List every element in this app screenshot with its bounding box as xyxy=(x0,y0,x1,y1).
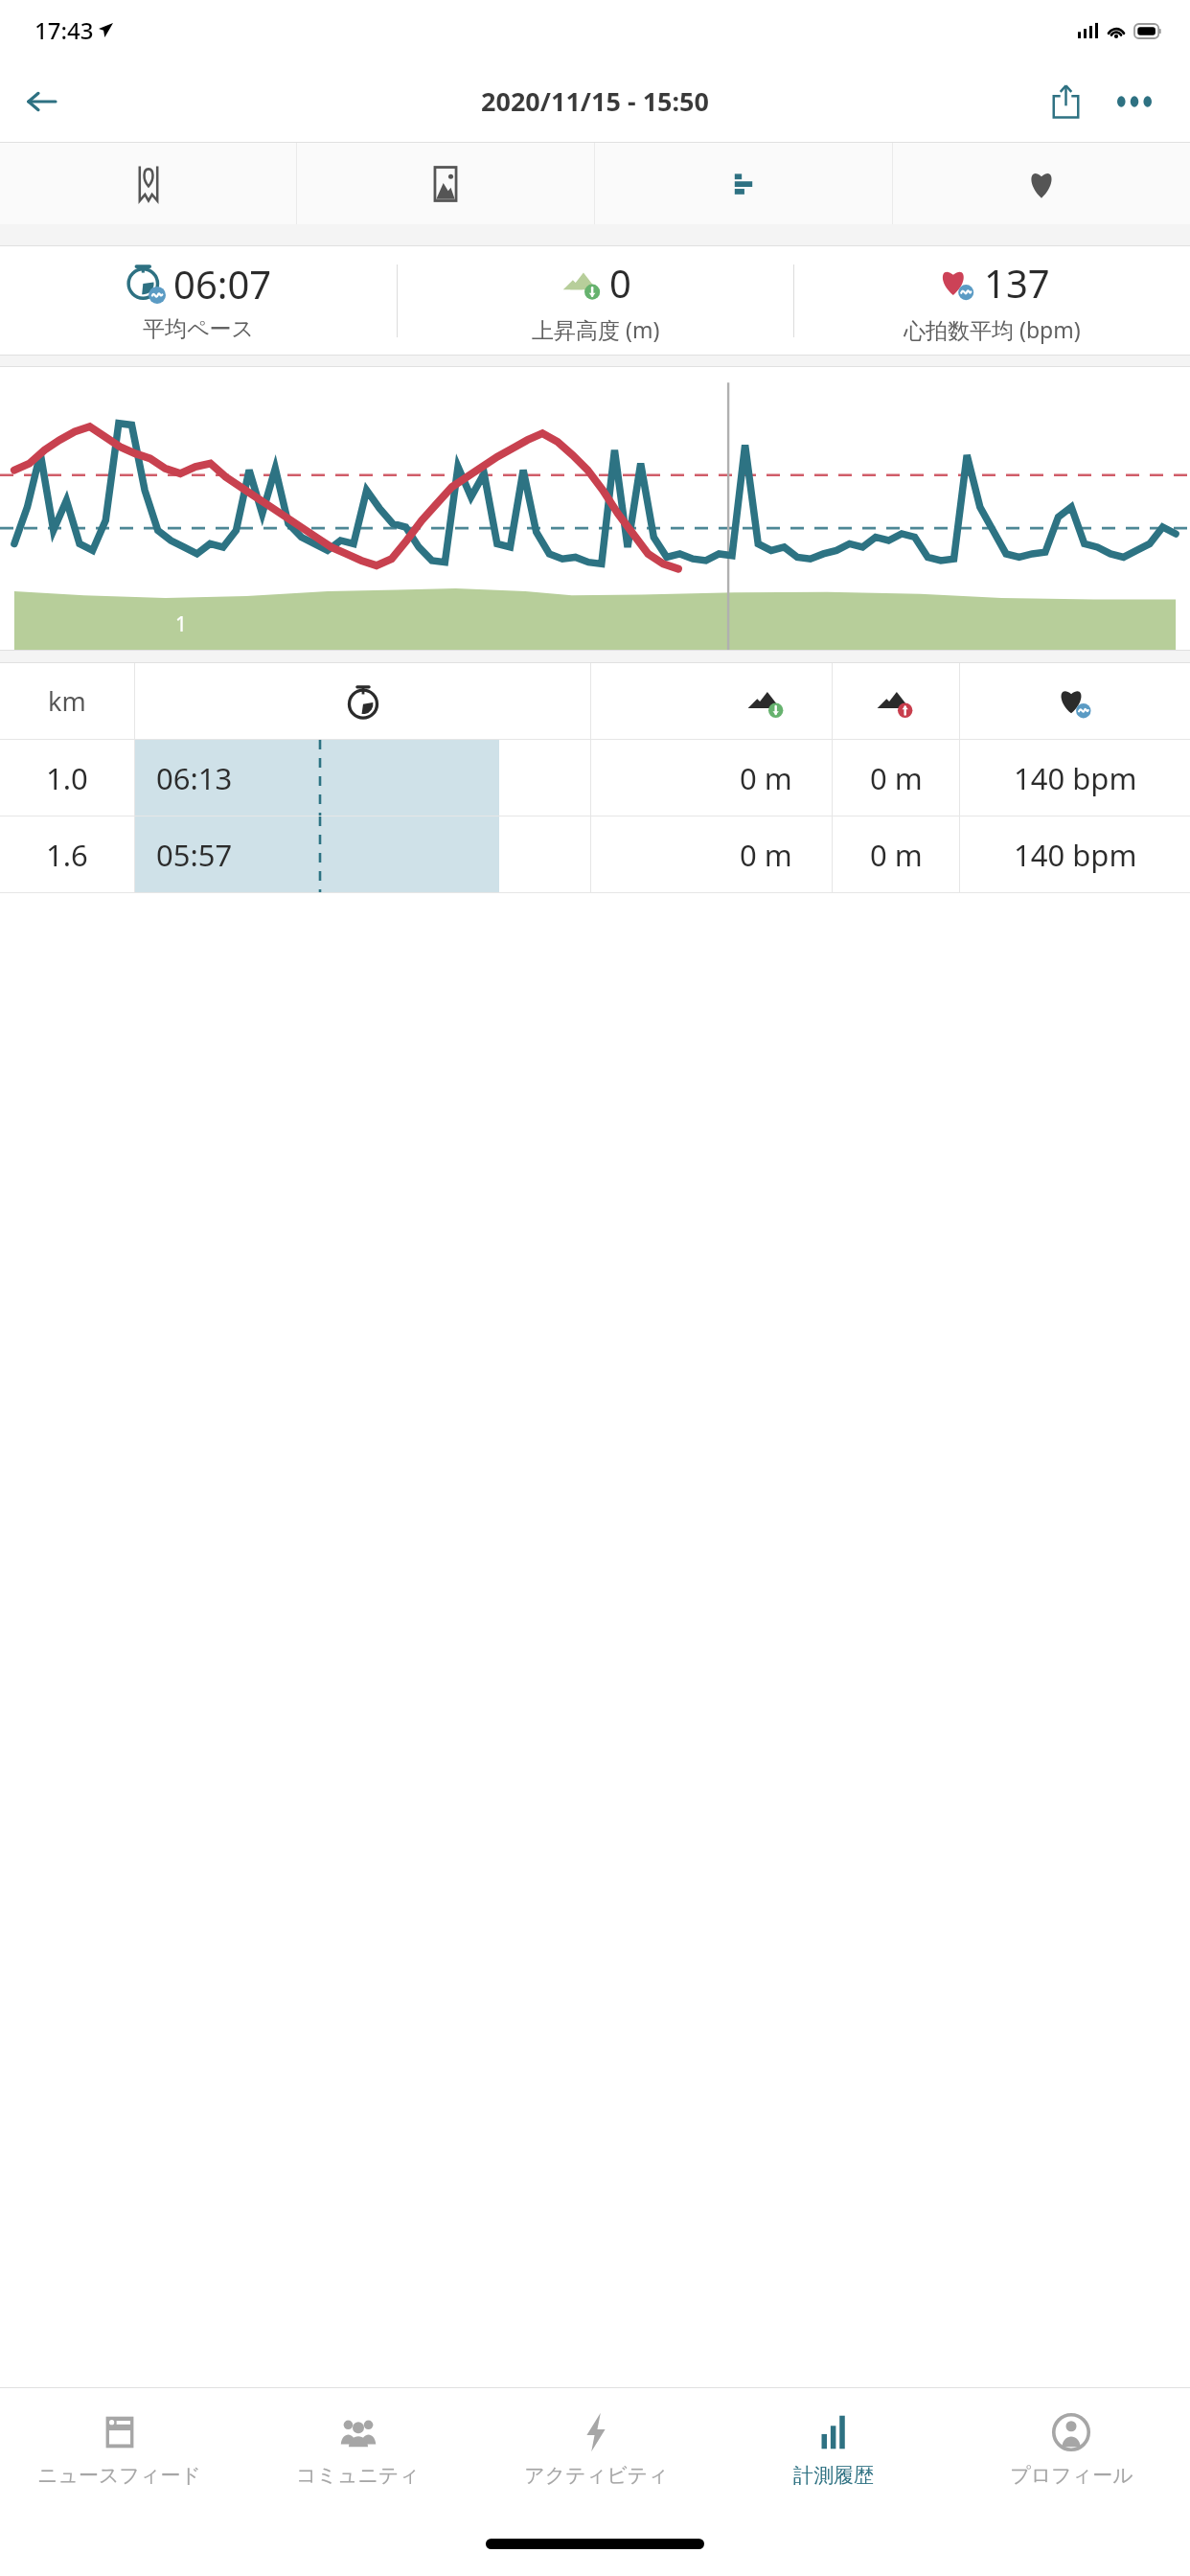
button[interactable]: Photos xyxy=(297,143,594,224)
staticText: 計測履歴 xyxy=(793,2463,874,2488)
staticText: 140 bpm xyxy=(1014,835,1137,875)
button[interactable]: 1.0 xyxy=(0,740,1190,816)
staticText: アクティビティ xyxy=(524,2463,669,2488)
staticText: 17:43 xyxy=(34,14,94,46)
staticText: ニュースフィード xyxy=(37,2463,201,2488)
staticText: 2020/11/15 - 15:50 xyxy=(481,83,710,119)
staticText: 06:07 xyxy=(173,258,272,310)
button[interactable]: 06:07 xyxy=(0,246,397,355)
button[interactable]: ニュースフィード xyxy=(0,2388,239,2522)
staticText: 137 xyxy=(984,257,1050,309)
staticText: プロフィール xyxy=(1010,2463,1133,2488)
button[interactable]: プロフィール xyxy=(952,2388,1190,2522)
staticText: 上昇高度 (m) xyxy=(532,314,660,344)
button[interactable]: Back xyxy=(13,74,69,129)
staticText: 1 xyxy=(175,610,188,638)
button[interactable]: Share xyxy=(1031,67,1100,136)
staticText: 心拍数平均 (bpm) xyxy=(904,314,1081,344)
button[interactable]: Splits xyxy=(595,143,892,224)
staticText: コミュニティ xyxy=(296,2463,420,2488)
staticText: 0 m xyxy=(870,758,923,798)
staticText: km xyxy=(48,683,86,719)
button[interactable]: アクティビティ xyxy=(477,2388,715,2522)
button[interactable]: コミュニティ xyxy=(239,2388,477,2522)
staticText: 0 m xyxy=(740,835,792,875)
button[interactable]: 137 xyxy=(794,246,1190,355)
button[interactable]: 計測履歴 xyxy=(715,2388,952,2522)
staticText: 0 m xyxy=(740,758,792,798)
button[interactable]: 1.6 xyxy=(0,816,1190,892)
button[interactable]: Heart rate xyxy=(893,143,1190,224)
staticText: 0 xyxy=(609,257,631,309)
staticText: 1.6 xyxy=(46,835,88,875)
button[interactable]: 0 xyxy=(398,246,793,355)
button[interactable]: More options xyxy=(1100,67,1169,136)
staticText: 1.0 xyxy=(46,758,88,798)
button[interactable]: Map xyxy=(0,143,296,224)
staticText: 06:13 xyxy=(156,758,233,798)
staticText: 140 bpm xyxy=(1014,758,1137,798)
staticText: 平均ペース xyxy=(143,315,255,343)
staticText: 05:57 xyxy=(156,835,233,875)
staticText: 0 m xyxy=(870,835,923,875)
